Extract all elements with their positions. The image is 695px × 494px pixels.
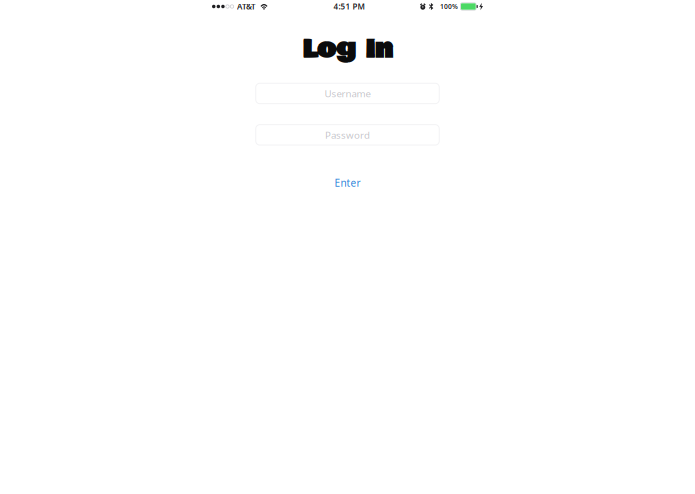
staticText: Enter	[334, 176, 360, 190]
button[interactable]: Username	[256, 83, 439, 104]
staticText: Username	[324, 87, 370, 100]
staticText: Password	[325, 128, 370, 141]
button[interactable]: Password	[256, 125, 439, 145]
button[interactable]: Enter	[325, 172, 369, 194]
staticText: AT&T	[237, 1, 256, 12]
staticText: 4:51 PM	[333, 1, 364, 12]
staticText: 100%	[440, 2, 458, 11]
staticText: Log In	[302, 30, 393, 69]
